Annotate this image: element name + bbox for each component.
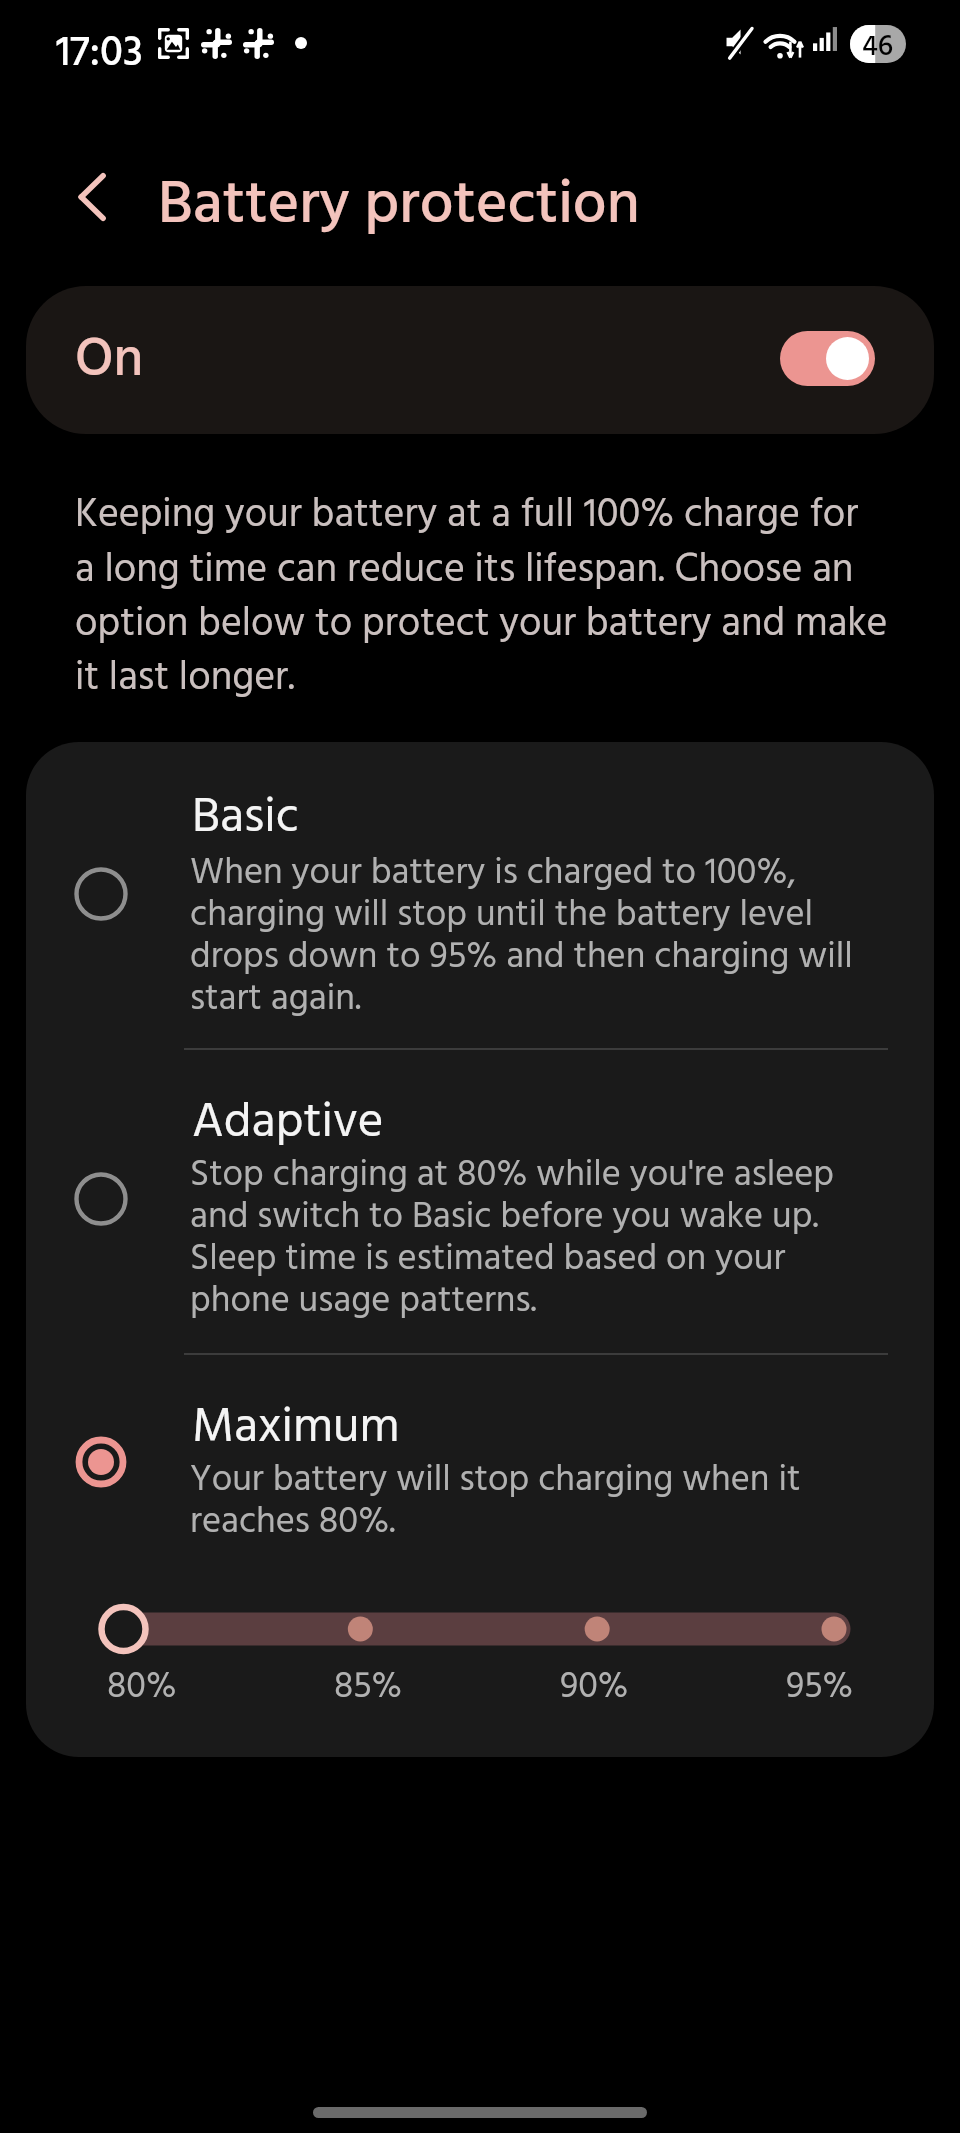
staticText: Your battery will stop charging when it … (190, 1451, 934, 1552)
staticText: 85% (334, 1659, 403, 1717)
staticText: 90% (560, 1659, 629, 1717)
staticText: 46 (862, 25, 894, 62)
button[interactable]: Adaptive (26, 1048, 934, 1353)
staticText: 80% (107, 1659, 177, 1717)
staticText: 17:03 (56, 21, 143, 88)
button[interactable]: On (26, 286, 934, 434)
staticText: Battery protection (158, 159, 640, 255)
button[interactable]: Navigate up (50, 158, 130, 238)
staticText: Keeping your battery at a full 100% char… (75, 484, 960, 710)
button[interactable]: Maximum (26, 1353, 934, 1560)
staticText: Maximum (192, 1389, 400, 1467)
staticText: On (75, 318, 144, 404)
button[interactable]: Basic (26, 742, 934, 1048)
staticText: Adaptive (192, 1084, 384, 1162)
staticText: When your battery is charged to 100%, ch… (190, 844, 934, 1029)
staticText: 95% (786, 1659, 853, 1717)
staticText: Stop charging at 80% while you're asleep… (190, 1146, 934, 1331)
staticText: Basic (192, 779, 299, 857)
